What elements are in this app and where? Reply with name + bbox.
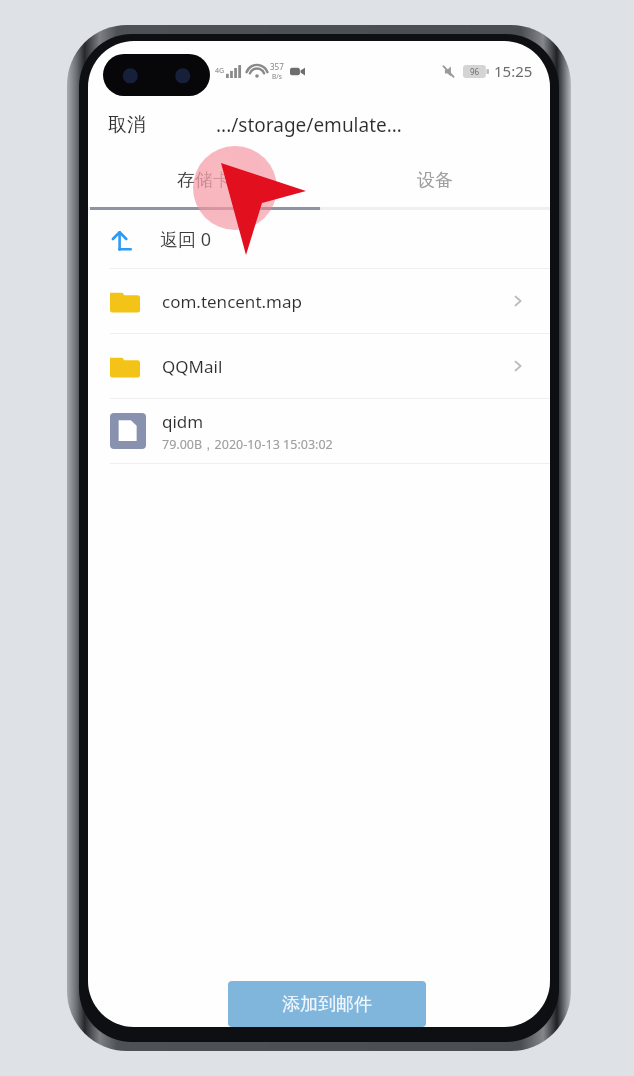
staticText: .../storage/emulate… [216, 112, 402, 138]
other: Open [510, 358, 526, 374]
staticText: 取消 [108, 113, 146, 137]
staticText: 添加到邮件 [282, 993, 372, 1016]
staticText: 返回 0 [160, 227, 211, 252]
button[interactable]: 取消 [100, 107, 154, 143]
button[interactable]: com.tencent.map [88, 269, 550, 333]
staticText: QQMail [162, 355, 223, 378]
button[interactable]: 设备 [319, 154, 550, 207]
staticText: qidm [162, 410, 204, 433]
staticText: 96 [470, 66, 480, 77]
button[interactable]: 返回 0 [88, 210, 550, 268]
staticText: 存储卡 [177, 169, 231, 192]
button[interactable]: 添加到邮件 [228, 981, 426, 1027]
button[interactable]: QQMail [88, 334, 550, 398]
staticText: 15:25 [494, 61, 533, 81]
staticText: 357 [270, 61, 284, 72]
staticText: com.tencent.map [162, 290, 302, 313]
staticText: 4G [215, 66, 225, 76]
button[interactable]: 存储卡 [88, 154, 319, 207]
other: Open [510, 293, 526, 309]
button[interactable]: qidm [88, 399, 550, 463]
staticText: B/s [272, 72, 282, 81]
staticText: 79.00B，2020-10-13 15:03:02 [162, 436, 333, 453]
staticText: 设备 [417, 169, 453, 192]
